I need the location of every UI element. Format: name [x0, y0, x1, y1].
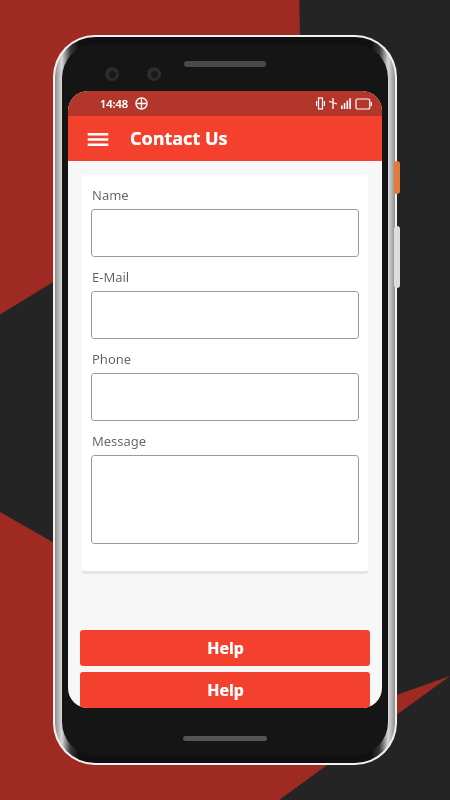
staticText: 14:48: [100, 96, 129, 111]
button[interactable]: [91, 455, 359, 544]
staticText: Message: [92, 432, 147, 450]
staticText: Help: [207, 637, 244, 659]
button[interactable]: [91, 209, 359, 257]
button[interactable]: [91, 373, 359, 421]
staticText: Name: [92, 186, 129, 204]
button[interactable]: Help: [80, 672, 370, 708]
button[interactable]: Open navigation menu: [82, 123, 114, 155]
button[interactable]: Help: [80, 630, 370, 666]
staticText: Help: [207, 679, 244, 701]
staticText: Contact Us: [130, 126, 228, 151]
button[interactable]: [91, 291, 359, 339]
staticText: Phone: [92, 350, 132, 368]
staticText: E-Mail: [92, 268, 130, 286]
